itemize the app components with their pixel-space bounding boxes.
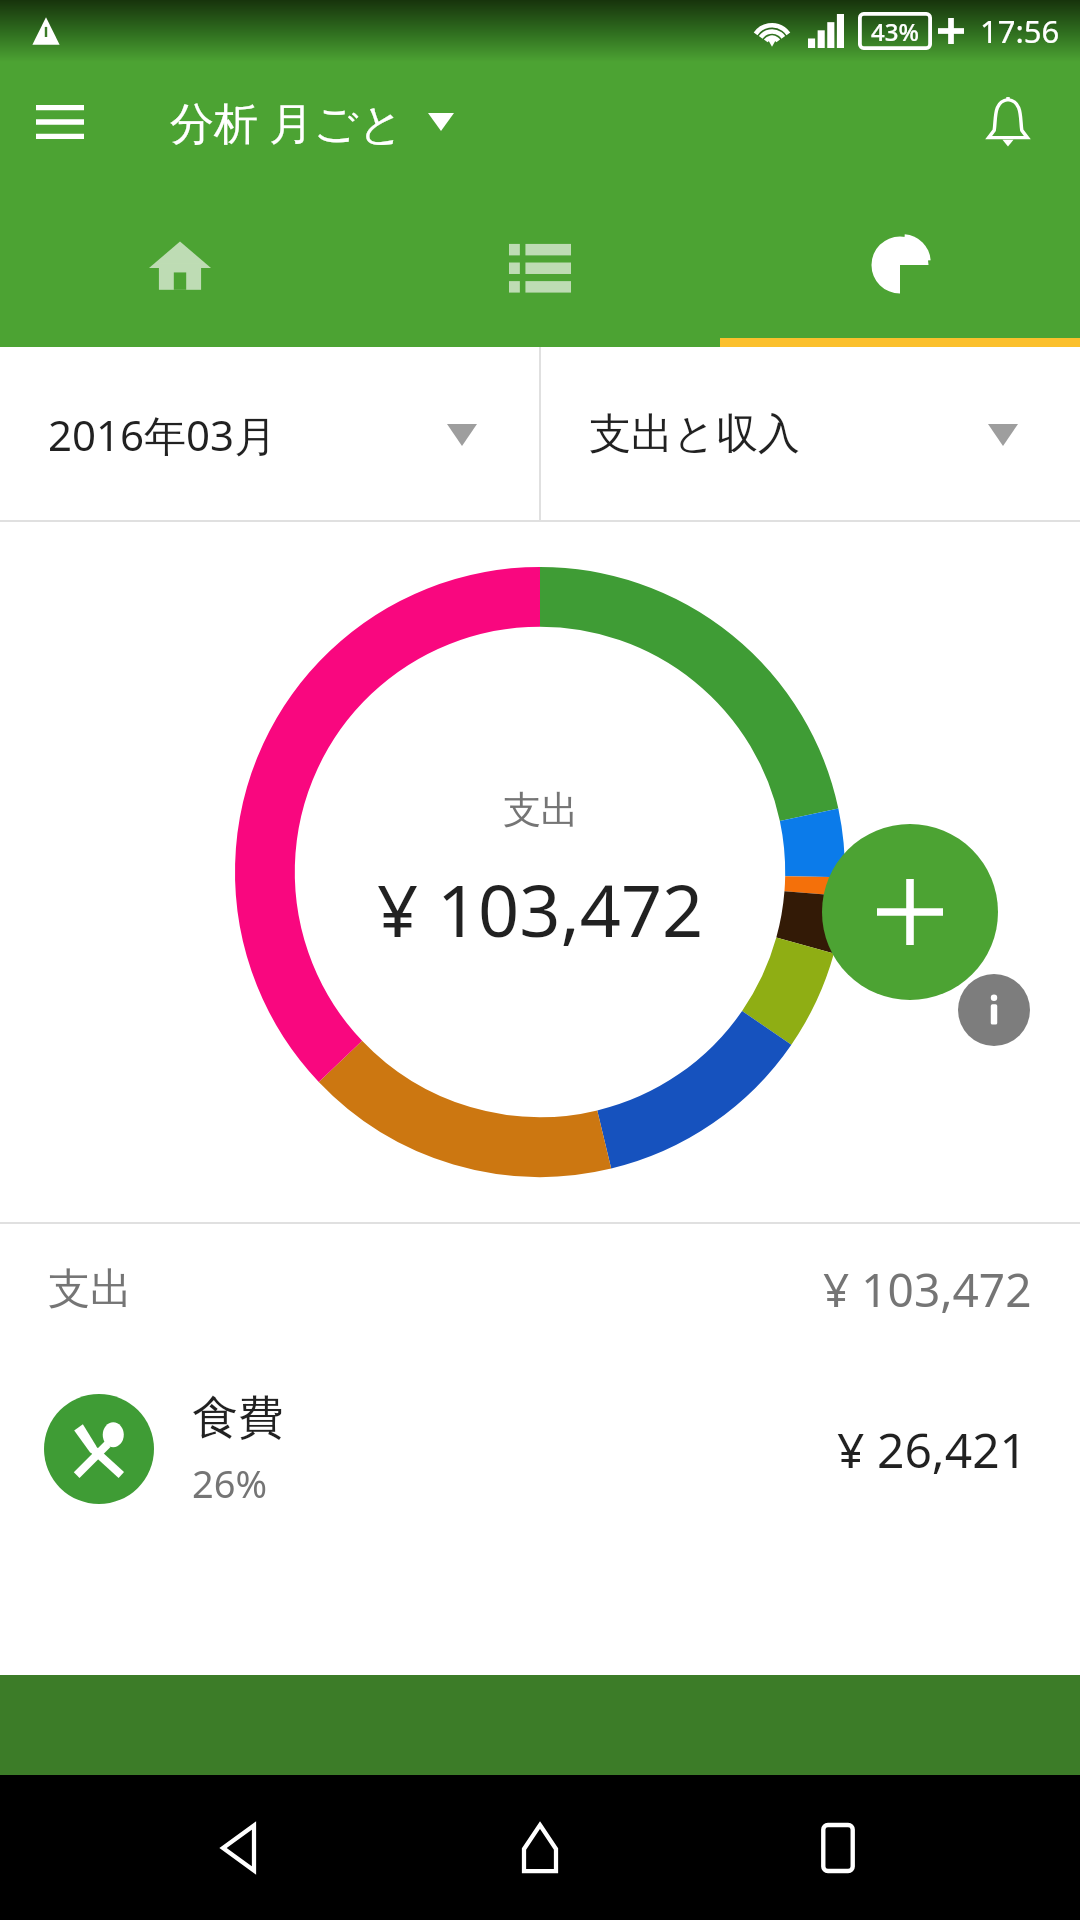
- button[interactable]: 食費: [0, 1354, 1080, 1544]
- button[interactable]: List: [360, 182, 720, 347]
- staticText: 43%: [871, 15, 919, 48]
- button[interactable]: Menu: [28, 90, 92, 154]
- button[interactable]: Recents: [783, 1793, 893, 1903]
- staticText: 支出: [503, 786, 579, 834]
- button[interactable]: Analysis: [720, 182, 1080, 347]
- staticText: 2016年03月: [48, 406, 277, 463]
- button[interactable]: Home: [0, 182, 360, 347]
- button[interactable]: Home: [485, 1793, 595, 1903]
- staticText: 食費: [192, 1389, 284, 1447]
- button[interactable]: 支出: [0, 1224, 1080, 1354]
- staticText: ¥ 103,472: [377, 860, 704, 958]
- button[interactable]: 2016年03月: [0, 347, 539, 522]
- button[interactable]: 分析 月ごと: [170, 92, 454, 152]
- button[interactable]: Back: [188, 1793, 298, 1903]
- button[interactable]: Info: [958, 974, 1030, 1046]
- staticText: ¥ 26,421: [837, 1417, 1028, 1482]
- staticText: 支出: [48, 1263, 132, 1316]
- staticText: 26%: [192, 1457, 268, 1509]
- staticText: ¥ 103,472: [823, 1258, 1032, 1321]
- button[interactable]: Notifications: [972, 86, 1044, 158]
- staticText: 17:56: [980, 10, 1060, 52]
- button[interactable]: 支出と収入: [541, 347, 1080, 522]
- staticText: 分析 月ごと: [170, 92, 404, 152]
- staticText: 支出と収入: [589, 408, 800, 461]
- button[interactable]: Add: [822, 824, 998, 1000]
